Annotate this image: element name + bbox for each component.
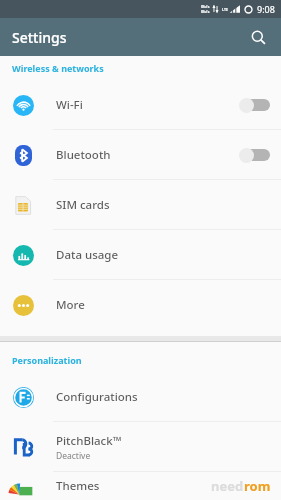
button[interactable] [239, 145, 271, 165]
staticText: need [211, 477, 244, 495]
button[interactable]: Configurations [0, 372, 281, 422]
button[interactable]: SIM cards [0, 180, 281, 230]
staticText: 0b/s [201, 4, 210, 9]
staticText: Deactive [56, 450, 91, 462]
staticText: More [56, 297, 85, 313]
staticText: SIM cards [56, 197, 110, 213]
staticText: Bluetooth [56, 147, 111, 163]
staticText: 9:08 [257, 3, 275, 15]
staticText: Personalization [12, 354, 82, 366]
staticText: Data usage [56, 247, 119, 263]
button[interactable]: Data usage [0, 230, 281, 280]
staticText: 0b/s [201, 9, 210, 14]
staticText: rom [244, 477, 271, 495]
button[interactable] [239, 95, 271, 115]
staticText: LTE [222, 7, 228, 12]
staticText: Settings [12, 28, 67, 47]
button[interactable]: More [0, 280, 281, 330]
staticText: PitchBlack™ [56, 433, 122, 449]
button[interactable]: Wi-Fi [0, 80, 281, 130]
staticText: Themes [56, 478, 100, 494]
button[interactable]: Bluetooth [0, 130, 281, 180]
button[interactable]: PitchBlack™ [0, 422, 281, 472]
staticText: Wi-Fi [56, 97, 83, 113]
staticText: Wireless & networks [12, 62, 104, 74]
button[interactable]: Themes [0, 472, 281, 500]
button[interactable]: Search [243, 22, 273, 52]
staticText: Configurations [56, 389, 138, 405]
